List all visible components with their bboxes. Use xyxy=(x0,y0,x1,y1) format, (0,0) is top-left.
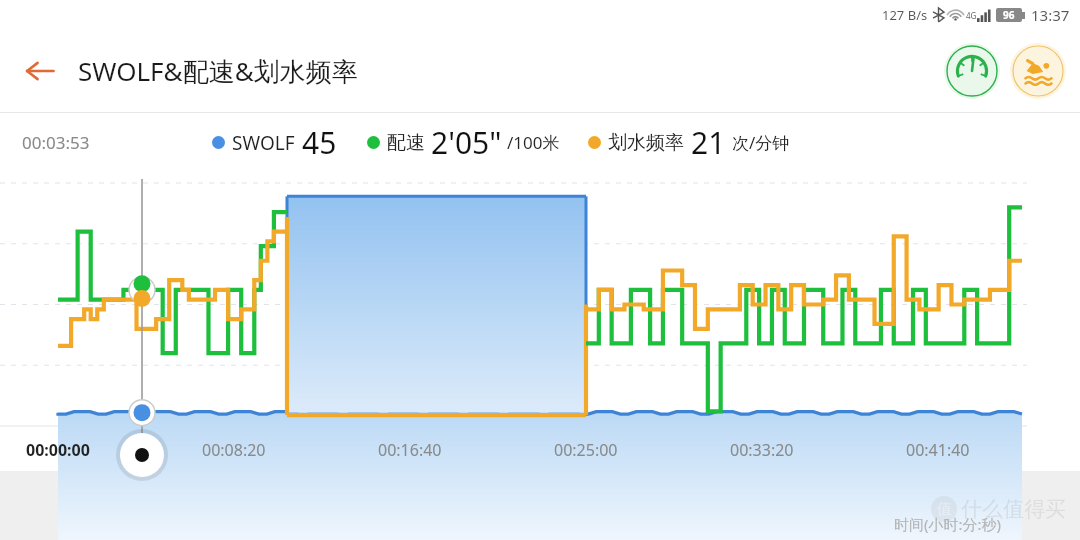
staticText: 96 xyxy=(1003,8,1015,22)
staticText: 127 B/s xyxy=(882,6,928,24)
staticText: 00:03:53 xyxy=(22,131,90,154)
staticText: 13:37 xyxy=(1031,5,1070,25)
button[interactable]: Pace details xyxy=(944,43,1000,99)
staticText: 划水频率 xyxy=(608,131,684,155)
staticText: 21 xyxy=(691,122,726,163)
staticText: SWOLF xyxy=(232,130,295,156)
staticText: 45 xyxy=(302,122,337,163)
staticText: 2'05" xyxy=(431,122,502,163)
staticText: 00:16:40 xyxy=(378,439,442,461)
staticText: 00:41:40 xyxy=(906,439,970,461)
staticText: 4G xyxy=(966,10,977,21)
staticText: 配速 xyxy=(387,131,425,155)
staticText: 00:00:00 xyxy=(26,439,90,461)
staticText: 值 xyxy=(937,500,952,519)
staticText: /100米 xyxy=(507,131,560,154)
staticText: 00:25:00 xyxy=(554,439,618,461)
staticText: 00:08:20 xyxy=(202,439,266,461)
staticText: 次/分钟 xyxy=(732,131,790,154)
button[interactable]: Swimming xyxy=(1010,43,1066,99)
staticText: 时间(小时:分:秒) xyxy=(894,514,1002,534)
staticText: 什么值得买 xyxy=(961,496,1066,522)
button[interactable]: Back xyxy=(14,45,66,97)
staticText: 00:33:20 xyxy=(730,439,794,461)
staticText: SWOLF&配速&划水频率 xyxy=(78,53,358,89)
